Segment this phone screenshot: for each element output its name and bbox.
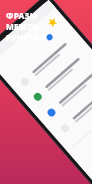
button[interactable]: App preview on phone [0,0,92,184]
button[interactable]: ФРАЗЫ [6,10,48,43]
staticText: РУНЕТА 2 [6,32,46,43]
staticText: МЕМОВ [6,21,40,32]
staticText: ФРАЗЫ [6,10,38,21]
